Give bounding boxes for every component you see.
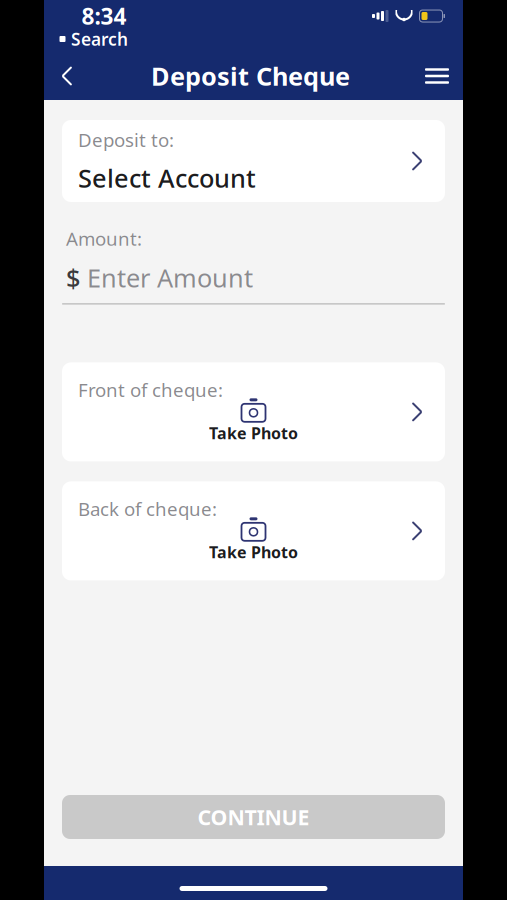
staticText: $ — [66, 261, 80, 294]
button[interactable]: CONTINUE — [62, 795, 445, 839]
staticText: Deposit Cheque — [151, 59, 350, 93]
button[interactable]: Deposit to: — [62, 120, 445, 202]
staticText: Enter Amount — [87, 261, 253, 294]
staticText: Deposit to: — [78, 127, 174, 152]
staticText: Amount: — [66, 226, 142, 251]
staticText: Select Account — [78, 161, 256, 195]
staticText: Back of cheque: — [78, 496, 217, 521]
button[interactable]: Back — [44, 54, 90, 98]
button[interactable]: Front of cheque: — [62, 362, 445, 461]
staticText: Take Photo — [209, 541, 298, 562]
button[interactable]: Menu — [411, 54, 463, 98]
staticText: Search — [71, 27, 128, 50]
staticText: Take Photo — [209, 422, 298, 443]
button[interactable]: Back of cheque: — [62, 481, 445, 580]
staticText: Front of cheque: — [78, 377, 223, 402]
staticText: CONTINUE — [197, 803, 309, 831]
staticText: 8:34 — [81, 1, 126, 31]
